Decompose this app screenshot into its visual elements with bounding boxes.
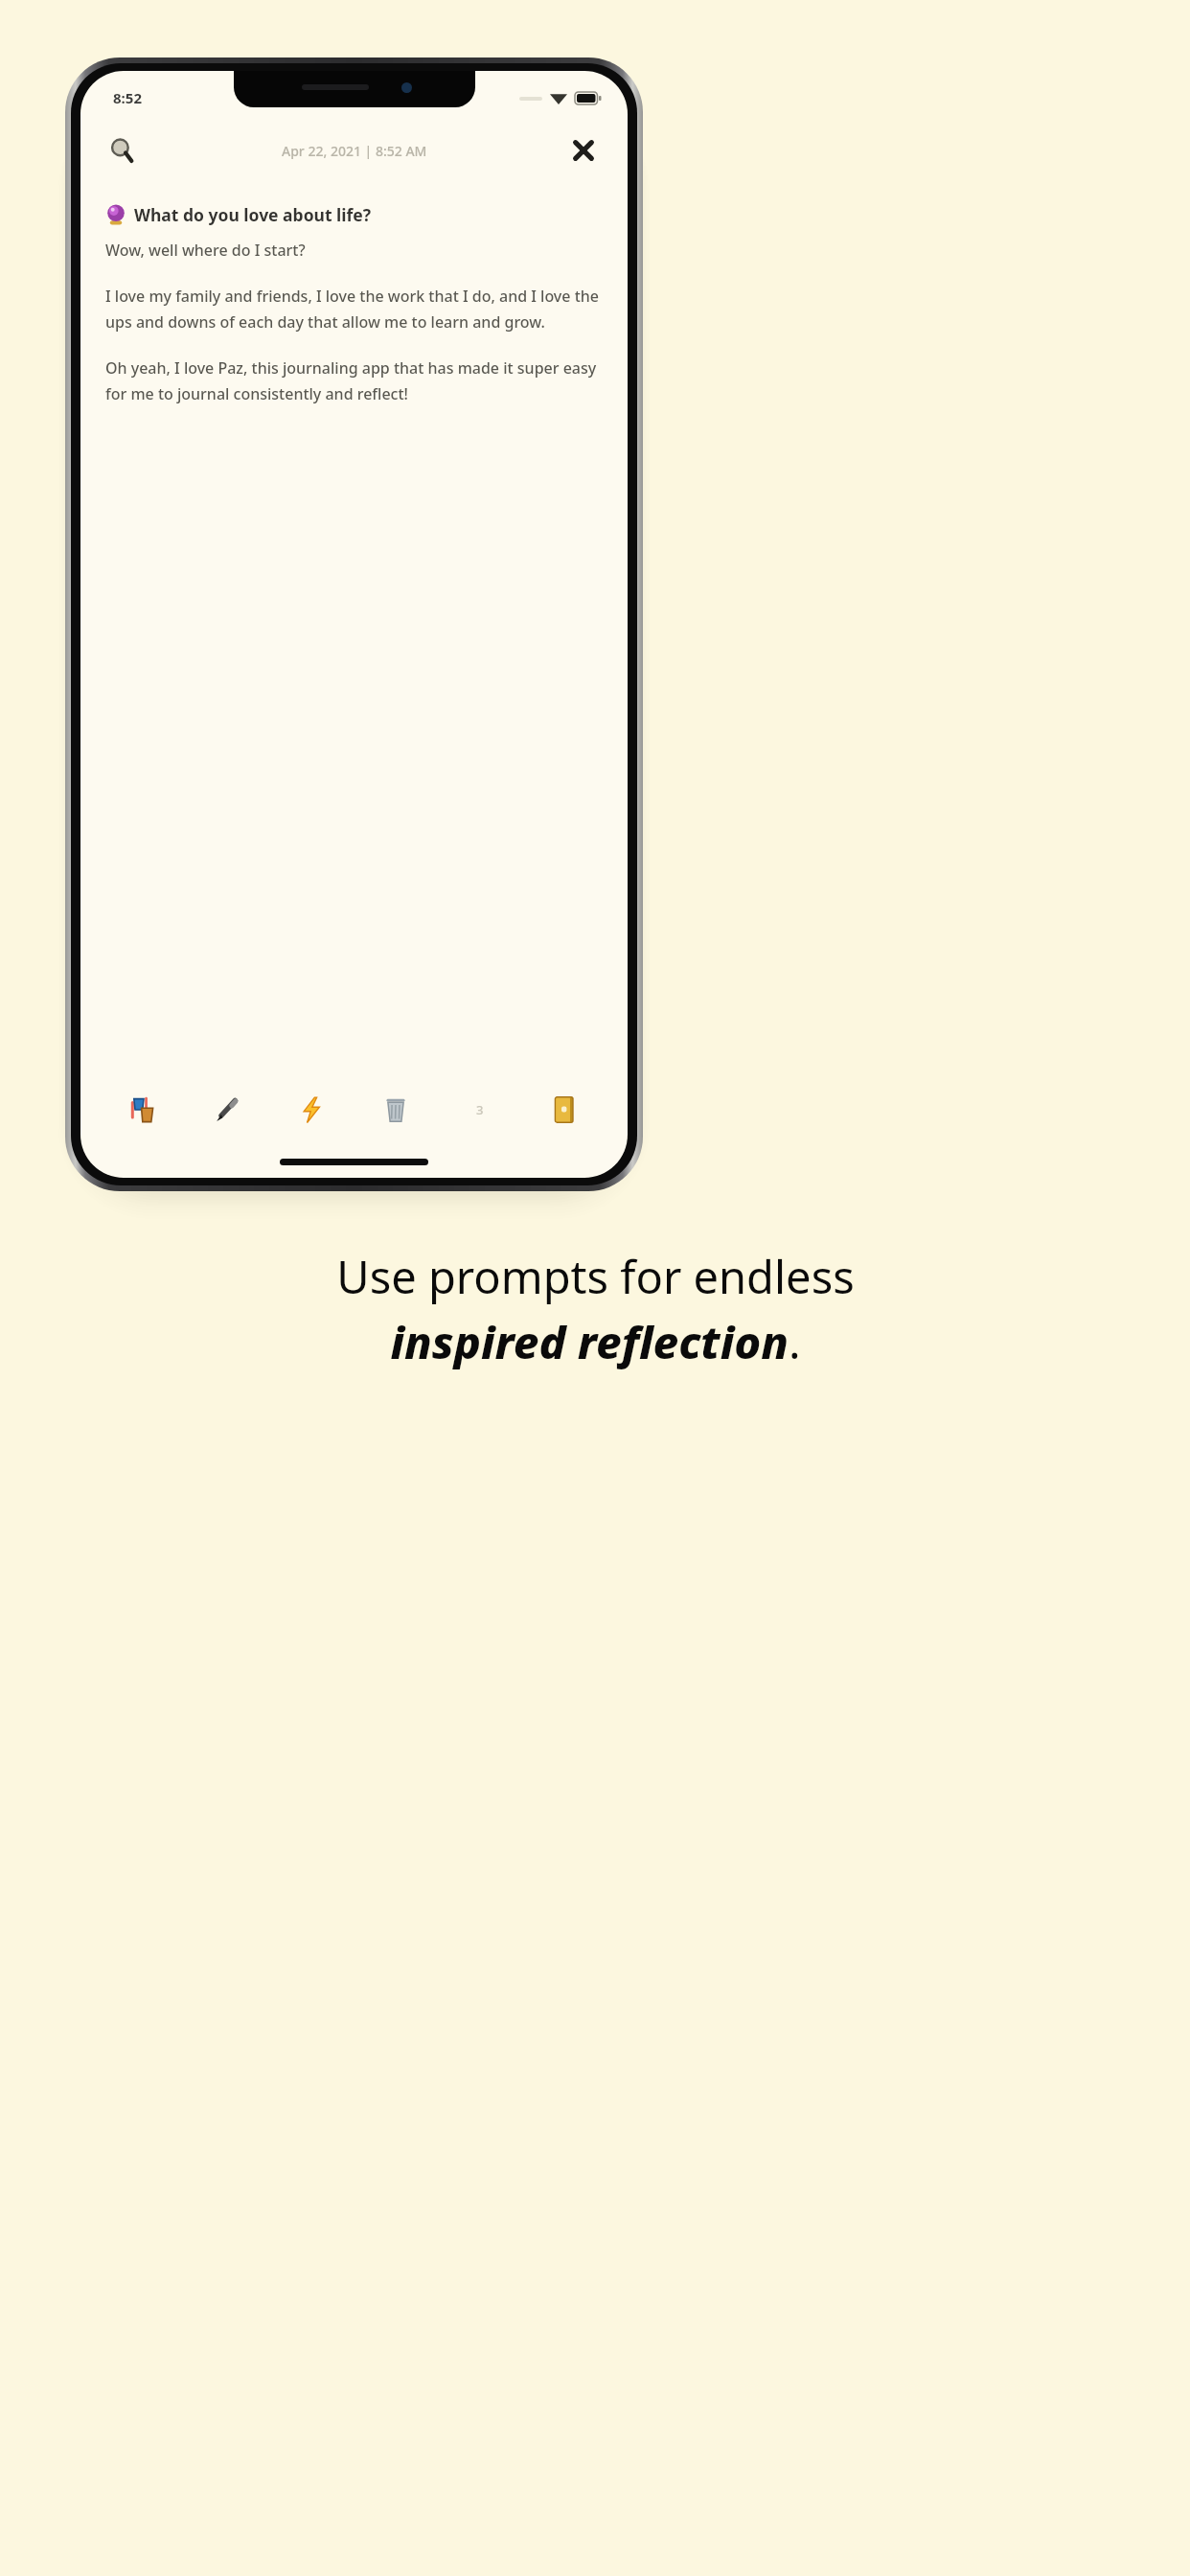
- staticText: Apr 22, 2021 | 8:52 AM: [282, 142, 427, 160]
- button[interactable]: Pen: [185, 1074, 269, 1145]
- button[interactable]: Search: [98, 126, 148, 175]
- button[interactable]: Notebook: [522, 1074, 606, 1145]
- staticText: I love my family and friends, I love the…: [105, 286, 603, 333]
- button[interactable]: 3: [438, 1074, 522, 1145]
- button[interactable]: Prompts: [269, 1074, 354, 1145]
- button[interactable]: Delete: [354, 1074, 438, 1145]
- staticText: Oh yeah, I love Paz, this journaling app…: [105, 357, 603, 404]
- button[interactable]: Themes: [102, 1074, 185, 1145]
- staticText: 3: [476, 1101, 484, 1118]
- staticText: 8:52: [113, 88, 142, 107]
- button[interactable]: Close: [559, 126, 608, 175]
- staticText: Use prompts for endless inspired reflect…: [336, 1246, 855, 1372]
- staticText: What do you love about life?: [134, 203, 372, 226]
- staticText: Wow, well where do I start?: [105, 240, 306, 261]
